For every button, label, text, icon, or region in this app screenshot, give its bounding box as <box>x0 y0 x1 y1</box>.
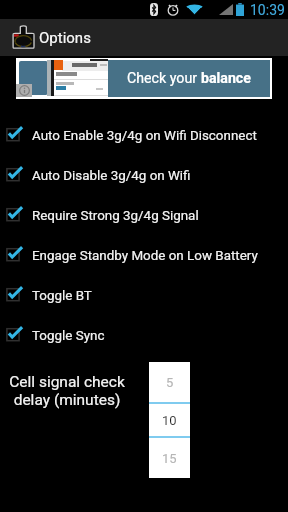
button[interactable]: Auto Enable 3g/4g on Wifi Disconnect <box>0 114 288 154</box>
button[interactable]: Toggle BT <box>0 274 288 314</box>
staticText: 15 <box>162 451 177 466</box>
staticText: Auto Disable 3g/4g on Wifi <box>32 168 191 184</box>
staticText: Toggle BT <box>32 288 92 304</box>
staticText: Auto Enable 3g/4g on Wifi Disconnect <box>32 128 257 144</box>
button[interactable]: 5 <box>149 362 190 478</box>
button[interactable]: Check your <box>16 58 272 99</box>
button[interactable]: Auto Disable 3g/4g on Wifi <box>0 154 288 194</box>
staticText: Require Strong 3g/4g Signal <box>32 208 199 224</box>
staticText: 10 <box>162 413 177 428</box>
staticText: balance <box>201 70 251 87</box>
staticText: Cell signal check delay (minutes) <box>0 373 134 409</box>
button[interactable]: Require Strong 3g/4g Signal <box>0 194 288 234</box>
staticText: Check your <box>127 70 201 87</box>
staticText: 10:39 <box>250 2 285 18</box>
staticText: 5 <box>166 375 174 390</box>
button[interactable]: Engage Standby Mode on Low Battery <box>0 234 288 274</box>
button[interactable]: Toggle Sync <box>0 314 288 354</box>
staticText: Options <box>39 29 91 47</box>
staticText: Engage Standby Mode on Low Battery <box>32 248 258 264</box>
staticText: Toggle Sync <box>32 328 105 344</box>
